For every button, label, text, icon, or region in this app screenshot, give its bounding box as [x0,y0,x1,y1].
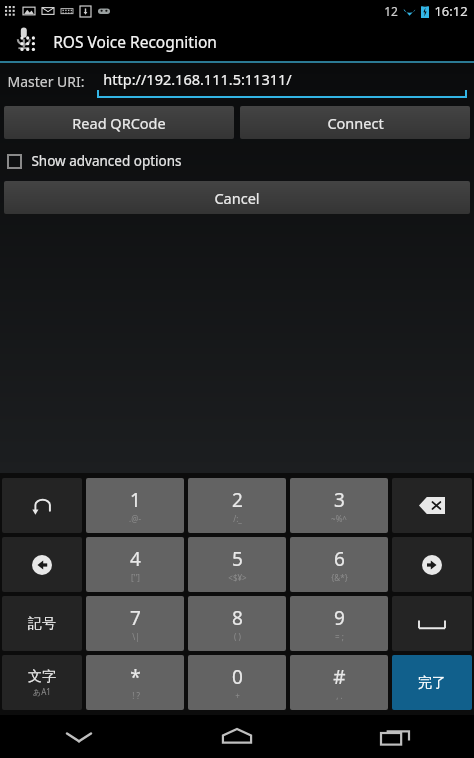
staticText: 2 [232,487,243,513]
button[interactable]: Cursor left [2,537,82,592]
staticText: Show advanced options [31,152,182,170]
staticText: + [235,690,240,701]
staticText: ~%^ [331,513,347,524]
button[interactable]: 8 [188,596,286,651]
button[interactable]: Connect [240,106,470,139]
button[interactable]: http://192.168.111.5:11311/ [97,63,467,99]
staticText: Cancel [214,188,260,208]
staticText: ( ) [234,631,241,642]
button[interactable]: 0 [188,655,286,710]
staticText: 記号 [28,615,56,633]
staticText: 5 [232,546,243,572]
button[interactable]: 7 [86,596,184,651]
staticText: http://192.168.111.5:11311/ [103,69,292,89]
staticText: 3 [334,487,345,513]
staticText: {&*} [331,572,348,583]
button[interactable]: # [290,655,388,710]
button[interactable]: 完了 [392,655,472,710]
button[interactable]: 記号 [2,596,82,651]
staticText: 完了 [418,674,446,692]
button[interactable]: Cursor right [392,537,472,592]
staticText: Connect [327,113,384,133]
staticText: , . [336,690,343,701]
button[interactable]: Undo [2,478,82,533]
staticText: 12 [384,3,398,19]
staticText: 1 [130,487,141,513]
staticText: /:_ [233,513,242,524]
staticText: 8 [232,605,243,631]
staticText: 7 [130,605,141,631]
button[interactable]: Home [158,715,316,758]
staticText: \| [132,631,140,642]
staticText: <$¥> [228,572,247,583]
button[interactable]: 5 [188,537,286,592]
button[interactable]: Recent apps [316,715,474,758]
button[interactable]: Read QRCode [4,106,234,139]
staticText: .@- [129,513,141,524]
staticText: Master URI: [7,72,85,91]
staticText: [''] [130,572,141,583]
button[interactable]: 文字 [2,655,82,710]
button[interactable]: 9 [290,596,388,651]
staticText: # [333,664,346,690]
staticText: * [130,664,141,690]
staticText: ROS Voice Recognition [53,31,217,52]
staticText: 6 [334,546,345,572]
staticText: 4 [130,546,141,572]
staticText: Read QRCode [72,113,166,133]
button[interactable]: 4 [86,537,184,592]
staticText: 0 [232,664,243,690]
button[interactable]: 2 [188,478,286,533]
staticText: あA1 [33,686,51,697]
button[interactable]: 3 [290,478,388,533]
staticText: ! ? [132,690,140,701]
button[interactable]: 6 [290,537,388,592]
staticText: 文字 [28,668,56,686]
staticText: 16:12 [434,2,468,20]
staticText: 9 [334,605,345,631]
button[interactable]: Hide keyboard [0,715,158,758]
staticText: = ; [335,631,344,642]
button[interactable]: Backspace [392,478,472,533]
button[interactable]: Space [392,596,472,651]
button[interactable]: Show advanced options [8,148,474,174]
button[interactable]: * [86,655,184,710]
button[interactable]: Cancel [4,181,470,214]
button[interactable]: 1 [86,478,184,533]
